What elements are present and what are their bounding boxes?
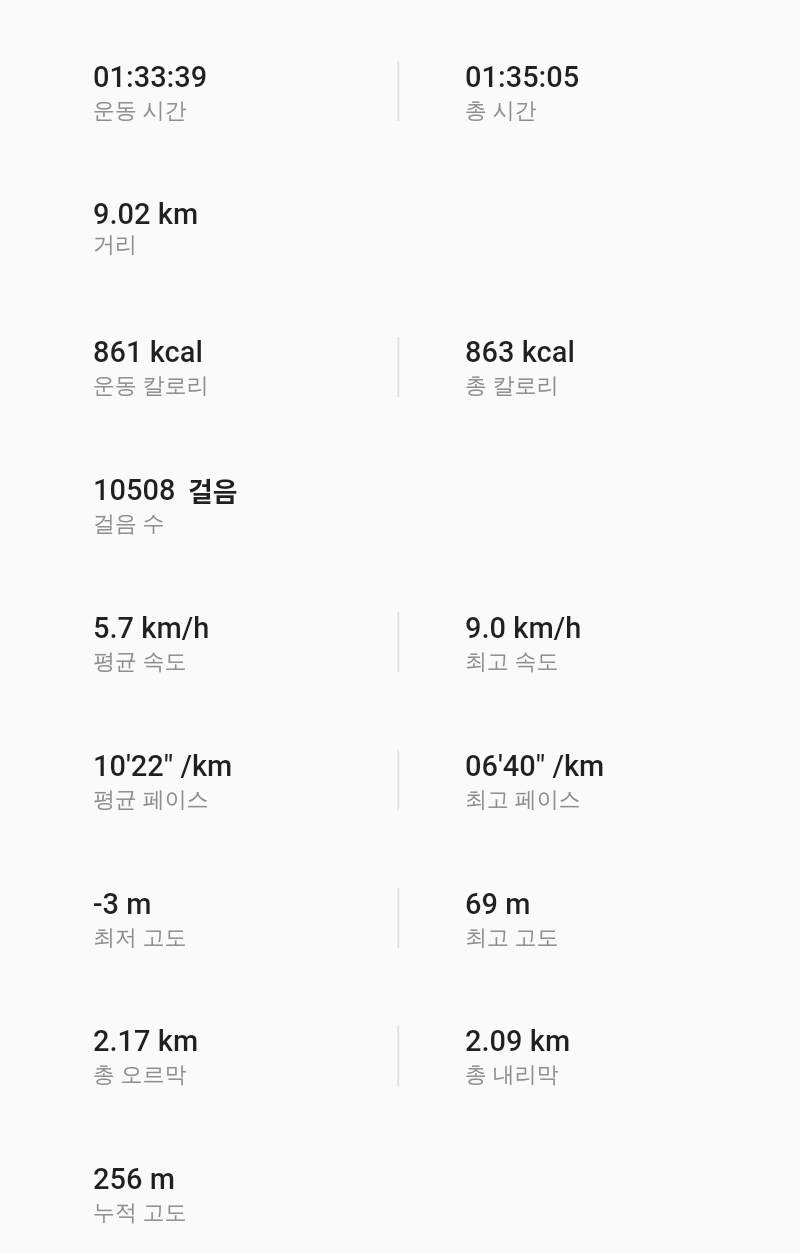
button[interactable]: 10508	[93, 473, 393, 539]
button[interactable]: 9.0 km/h	[465, 611, 765, 677]
staticText: 06'40" /km	[465, 749, 605, 783]
button[interactable]: -3 m	[93, 887, 393, 953]
staticText: 최고 속도	[465, 645, 559, 675]
staticText: 총 내리막	[465, 1058, 559, 1088]
staticText: 거리	[93, 231, 137, 259]
button[interactable]: 2.17 km	[93, 1024, 393, 1090]
staticText: 총 시간	[465, 94, 537, 124]
button[interactable]: 863 kcal	[465, 335, 765, 401]
staticText: 총 오르막	[93, 1058, 187, 1088]
staticText: 5.7 km/h	[93, 611, 210, 645]
button[interactable]: 69 m	[465, 887, 765, 953]
staticText: 01:35:05	[465, 60, 580, 94]
staticText: 2.17 km	[93, 1024, 199, 1058]
staticText: 01:33:39	[93, 60, 208, 94]
staticText: 863 kcal	[465, 335, 575, 369]
staticText: -3 m	[93, 887, 152, 921]
staticText: 평균 속도	[93, 645, 187, 675]
button[interactable]: 861 kcal	[93, 335, 393, 401]
staticText: 운동 시간	[93, 94, 187, 124]
staticText: 9.0 km/h	[465, 611, 582, 645]
staticText: 10508	[93, 473, 190, 507]
button[interactable]: 9.02 km	[93, 197, 393, 263]
staticText: 최고 고도	[465, 921, 559, 951]
staticText: 861 kcal	[93, 335, 203, 369]
button[interactable]: 2.09 km	[465, 1024, 765, 1090]
staticText: 최고 페이스	[465, 783, 581, 813]
staticText: 총 칼로리	[465, 369, 559, 399]
button[interactable]: 5.7 km/h	[93, 611, 393, 677]
button[interactable]: 06'40" /km	[465, 749, 765, 815]
staticText: 69 m	[465, 887, 531, 921]
staticText: 평균 페이스	[93, 783, 209, 813]
staticText: 256 m	[93, 1162, 175, 1196]
staticText: 10'22" /km	[93, 749, 233, 783]
staticText: 걸음	[188, 471, 238, 510]
staticText: 9.02 km	[93, 197, 199, 231]
staticText: 2.09 km	[465, 1024, 571, 1058]
staticText: 최저 고도	[93, 921, 187, 951]
button[interactable]: 01:35:05	[465, 60, 765, 126]
staticText: 누적 고도	[93, 1196, 187, 1226]
button[interactable]: 256 m	[93, 1162, 393, 1228]
button[interactable]: 10'22" /km	[93, 749, 393, 815]
button[interactable]: 01:33:39	[93, 60, 393, 126]
staticText: 운동 칼로리	[93, 369, 209, 399]
staticText: 걸음 수	[93, 507, 165, 537]
